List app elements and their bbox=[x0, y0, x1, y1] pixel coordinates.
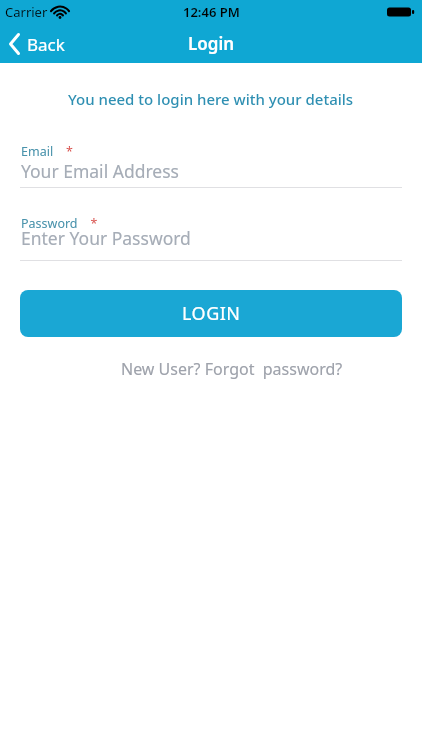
button[interactable]: Back bbox=[8, 32, 65, 56]
button[interactable]: LOGIN bbox=[20, 290, 402, 337]
staticText: Your Email Address bbox=[21, 159, 179, 183]
staticText: Back bbox=[27, 33, 65, 56]
button[interactable] bbox=[20, 212, 402, 262]
staticText: New User? Forgot password? bbox=[121, 358, 343, 380]
staticText: You need to login here with your details bbox=[68, 89, 354, 109]
staticText: Password * bbox=[21, 215, 98, 232]
button[interactable] bbox=[20, 140, 402, 190]
staticText: Login bbox=[188, 32, 235, 55]
staticText: Email * bbox=[21, 143, 73, 160]
staticText: Carrier bbox=[5, 3, 48, 21]
staticText: 12:46 PM bbox=[183, 3, 240, 21]
button[interactable]: New User? Forgot password? bbox=[121, 358, 343, 380]
staticText: LOGIN bbox=[182, 301, 241, 326]
staticText: Enter Your Password bbox=[21, 226, 191, 250]
